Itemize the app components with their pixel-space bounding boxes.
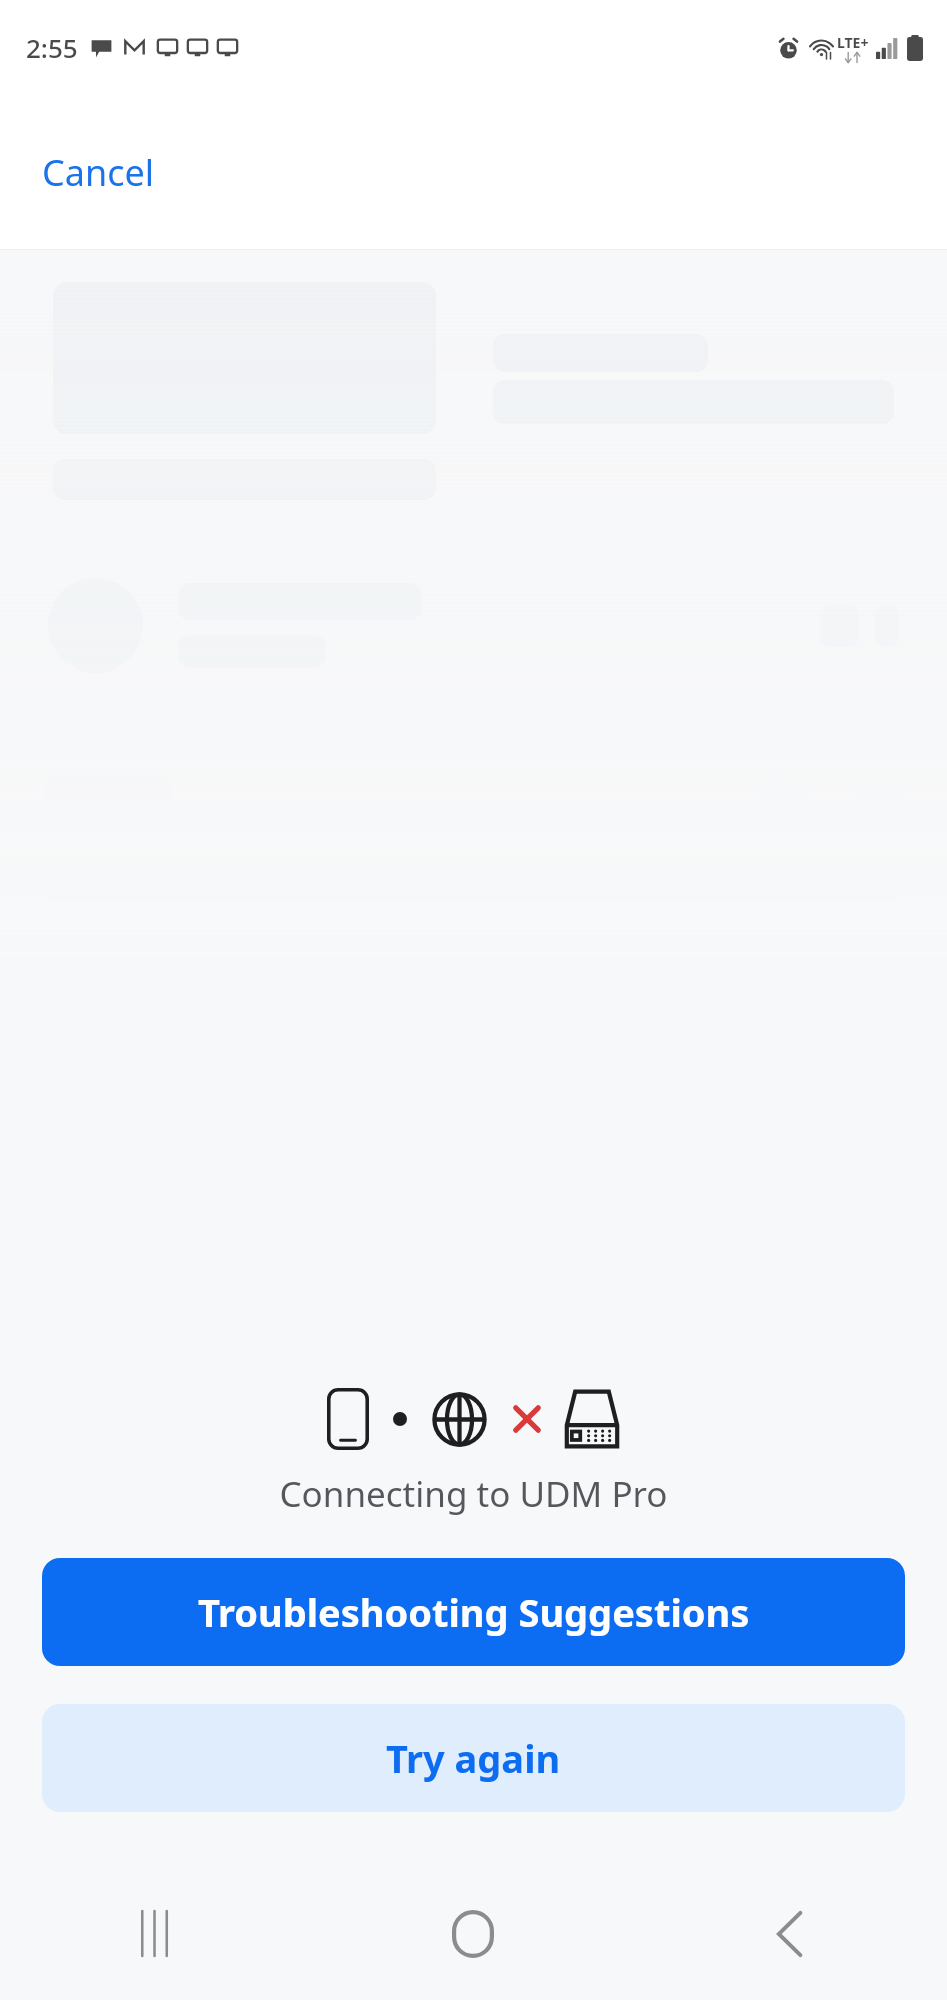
staticText: Try again — [386, 1732, 561, 1784]
staticText: 2:55 — [26, 30, 78, 65]
staticText: Cancel — [42, 148, 155, 197]
button[interactable]: Home — [315, 1867, 631, 2000]
staticText: LTE+ — [837, 33, 869, 52]
button[interactable]: Troubleshooting Suggestions — [42, 1558, 905, 1666]
button[interactable]: Try again — [42, 1704, 905, 1812]
staticText: Connecting to UDM Pro — [279, 1470, 668, 1518]
button[interactable]: Recents — [0, 1867, 315, 2000]
button[interactable]: Back — [631, 1867, 947, 2000]
staticText: Troubleshooting Suggestions — [198, 1586, 750, 1638]
button[interactable]: Cancel — [24, 136, 173, 209]
